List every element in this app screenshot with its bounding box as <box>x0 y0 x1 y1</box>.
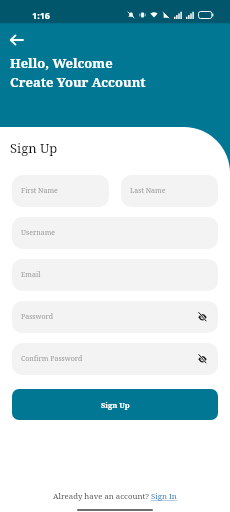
staticText: Sign Up <box>101 400 130 410</box>
button[interactable]: Back <box>5 29 27 51</box>
button[interactable]: Last Name <box>121 175 218 207</box>
button[interactable]: Sign Up <box>12 389 218 420</box>
button[interactable]: Username <box>12 217 218 249</box>
staticText: Sign Up <box>10 139 58 157</box>
button[interactable]: Toggle password visibility <box>195 352 209 366</box>
staticText: Last Name <box>130 186 166 196</box>
staticText: Already have an account? <box>53 491 151 502</box>
staticText: Confirm Password <box>21 354 83 364</box>
button[interactable]: Confirm Password <box>12 343 218 375</box>
staticText: Create Your Account <box>10 73 146 91</box>
button[interactable]: Toggle password visibility <box>195 310 209 324</box>
staticText: Password <box>21 312 54 322</box>
button[interactable]: First Name <box>12 175 109 207</box>
staticText: 1:16 <box>32 9 50 21</box>
staticText: Sign In <box>151 491 177 502</box>
staticText: Username <box>21 228 56 238</box>
staticText: First Name <box>21 186 58 196</box>
button[interactable]: Sign In <box>151 491 177 502</box>
button[interactable]: Password <box>12 301 218 333</box>
staticText: Email <box>21 270 41 280</box>
staticText: Hello, Welcome <box>10 54 113 72</box>
button[interactable]: Email <box>12 259 218 291</box>
